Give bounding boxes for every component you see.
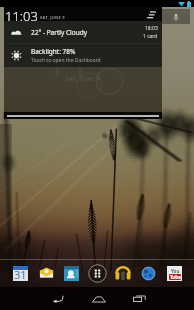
button[interactable]: Home [81, 287, 117, 310]
button[interactable]: Calendar [10, 263, 30, 283]
staticText: 22° - Partly Cloudy [31, 28, 88, 37]
staticText: Touch to open the Dashboard [31, 57, 101, 64]
staticText: 11:03 [5, 7, 38, 21]
staticText: Tube [170, 274, 181, 280]
staticText: SAT, JUNE 9 [40, 15, 65, 20]
button[interactable]: People [61, 263, 81, 283]
staticText: You [171, 268, 180, 274]
button[interactable]: Browser [138, 263, 158, 283]
staticText: 1 card [143, 33, 158, 40]
button[interactable]: Apps [87, 263, 107, 283]
button[interactable]: Quick settings [147, 11, 156, 19]
button[interactable]: Backlight: 78% [4, 44, 162, 67]
button[interactable]: Email [36, 263, 56, 283]
staticText: 31 [14, 267, 27, 282]
staticText: Backlight: 78% [31, 47, 76, 56]
button[interactable]: Music [113, 263, 133, 283]
button[interactable]: YouTube [164, 263, 184, 283]
button[interactable]: 22° - Partly Cloudy [4, 21, 162, 43]
button[interactable]: Back [40, 287, 76, 310]
button[interactable]: Voice search [162, 9, 190, 24]
staticText: SAT, JUNE 9 [66, 76, 101, 83]
button[interactable]: Recent apps [121, 287, 157, 310]
staticText: 18:03 [145, 25, 158, 32]
